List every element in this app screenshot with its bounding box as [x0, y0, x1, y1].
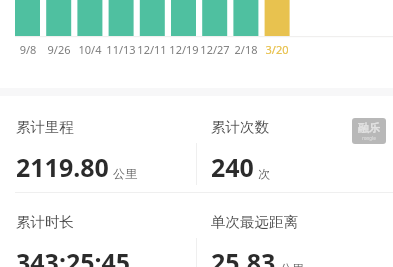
staticText: 2119.80: [16, 150, 109, 184]
button[interactable]: 累计里程: [16, 118, 194, 184]
staticText: 累计时长: [16, 213, 74, 231]
staticText: 融乐: [358, 121, 380, 135]
staticText: 343:25:45: [16, 245, 131, 267]
staticText: 次: [258, 166, 270, 181]
staticText: 累计里程: [16, 118, 74, 136]
staticText: 25.83: [211, 245, 276, 267]
staticText: rongle: [362, 135, 376, 141]
staticText: 12/27: [198, 42, 232, 57]
staticText: 公里: [113, 166, 137, 181]
staticText: 10/4: [73, 42, 107, 57]
staticText: 公里: [280, 261, 304, 267]
other: Watermark: [352, 118, 386, 144]
staticText: 11/13: [104, 42, 138, 57]
staticText: 240: [211, 150, 254, 184]
button[interactable]: 累计次数: [211, 118, 389, 184]
staticText: 单次最远距离: [211, 213, 298, 231]
staticText: 9/8: [11, 42, 45, 57]
button[interactable]: 单次最远距离: [211, 213, 389, 267]
button[interactable]: 累计时长: [16, 213, 194, 267]
staticText: 3/20: [260, 42, 294, 57]
staticText: 9/26: [42, 42, 76, 57]
staticText: 2/18: [229, 42, 263, 57]
staticText: 累计次数: [211, 118, 269, 136]
staticText: 12/11: [135, 42, 169, 57]
staticText: 12/19: [167, 42, 201, 57]
